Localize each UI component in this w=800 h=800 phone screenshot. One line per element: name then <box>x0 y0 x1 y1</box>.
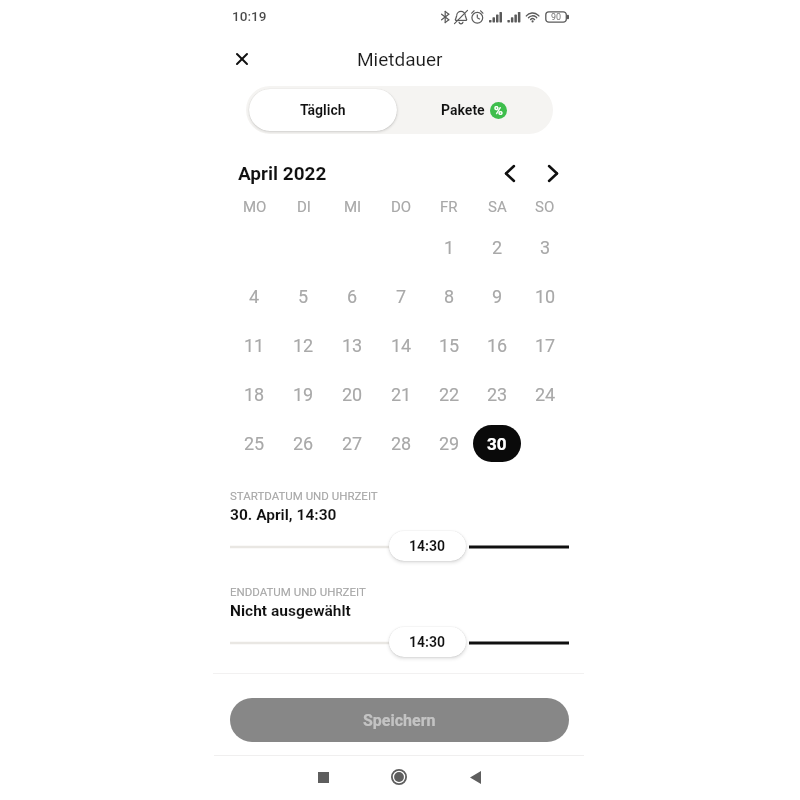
button[interactable]: 6 <box>328 275 377 317</box>
button[interactable]: Home <box>383 761 415 793</box>
staticText: 12 <box>293 335 314 356</box>
staticText: Mietdauer <box>357 48 443 70</box>
staticText: 8 <box>444 286 455 307</box>
button[interactable]: 3 <box>521 226 569 268</box>
button[interactable]: 30 <box>473 425 521 462</box>
button[interactable]: Close <box>226 43 257 74</box>
button[interactable]: 14:30 <box>389 531 466 561</box>
staticText: Nicht ausgewählt <box>230 602 351 620</box>
staticText: % <box>494 104 503 118</box>
button[interactable]: 16 <box>473 324 521 366</box>
staticText: 7 <box>396 286 407 307</box>
button[interactable]: 8 <box>425 275 473 317</box>
button[interactable]: 4 <box>230 275 279 317</box>
button[interactable]: 28 <box>377 422 425 464</box>
staticText: 14 <box>391 335 412 356</box>
staticText: 21 <box>391 384 412 405</box>
button[interactable]: 1 <box>425 226 473 268</box>
staticText: 16 <box>487 335 508 356</box>
staticText: MO <box>243 198 267 216</box>
button[interactable]: 5 <box>279 275 328 317</box>
staticText: 3 <box>540 237 551 258</box>
staticText: 29 <box>439 433 460 454</box>
staticText: 14:30 <box>409 538 446 554</box>
staticText: Speichern <box>363 711 436 730</box>
staticText: DO <box>391 198 412 216</box>
button[interactable]: 26 <box>279 422 328 464</box>
staticText: DI <box>297 198 311 216</box>
button[interactable]: Speichern <box>230 698 569 742</box>
button[interactable]: Pakete <box>397 86 550 134</box>
staticText: 26 <box>293 433 314 454</box>
button[interactable]: 2 <box>473 226 521 268</box>
staticText: STARTDATUM UND UHRZEIT <box>230 489 378 502</box>
staticText: 90 <box>551 12 562 22</box>
staticText: 20 <box>342 384 363 405</box>
staticText: 10 <box>535 286 556 307</box>
button[interactable]: Back <box>459 761 491 793</box>
staticText: April 2022 <box>238 162 327 184</box>
button[interactable]: 27 <box>328 422 377 464</box>
staticText: 10:19 <box>232 8 267 24</box>
staticText: Täglich <box>300 102 346 118</box>
staticText: SO <box>535 198 555 216</box>
button[interactable]: Next month <box>537 159 569 187</box>
button[interactable]: 25 <box>230 422 279 464</box>
button[interactable]: 23 <box>473 373 521 415</box>
staticText: 18 <box>244 384 265 405</box>
staticText: 22 <box>439 384 460 405</box>
button[interactable]: 11 <box>230 324 279 366</box>
button[interactable]: 18 <box>230 373 279 415</box>
staticText: 30. April, 14:30 <box>230 506 337 524</box>
staticText: MI <box>344 198 362 216</box>
staticText: 17 <box>535 335 556 356</box>
button[interactable]: 17 <box>521 324 569 366</box>
button[interactable]: 15 <box>425 324 473 366</box>
staticText: 13 <box>342 335 363 356</box>
staticText: Pakete <box>441 102 485 118</box>
staticText: 27 <box>342 433 363 454</box>
button[interactable]: 24 <box>521 373 569 415</box>
staticText: 24 <box>535 384 556 405</box>
staticText: 19 <box>293 384 314 405</box>
staticText: 4 <box>249 286 260 307</box>
button[interactable]: 12 <box>279 324 328 366</box>
button[interactable]: 20 <box>328 373 377 415</box>
staticText: 25 <box>244 433 265 454</box>
button[interactable]: 22 <box>425 373 473 415</box>
staticText: 30 <box>487 434 507 454</box>
button[interactable]: 10 <box>521 275 569 317</box>
button[interactable]: 14 <box>377 324 425 366</box>
staticText: 28 <box>391 433 412 454</box>
button[interactable]: 21 <box>377 373 425 415</box>
button[interactable]: Recents <box>307 761 339 793</box>
button[interactable]: 13 <box>328 324 377 366</box>
staticText: 23 <box>487 384 508 405</box>
staticText: 11 <box>244 335 265 356</box>
staticText: ENDDATUM UND UHRZEIT <box>230 585 366 598</box>
staticText: 2 <box>492 237 503 258</box>
button[interactable]: 14:30 <box>389 627 466 657</box>
button[interactable]: 29 <box>425 422 473 464</box>
button[interactable]: 9 <box>473 275 521 317</box>
staticText: 6 <box>347 286 358 307</box>
button[interactable]: Previous month <box>494 159 526 187</box>
button[interactable]: 7 <box>377 275 425 317</box>
button[interactable]: 19 <box>279 373 328 415</box>
staticText: 14:30 <box>409 634 446 650</box>
staticText: FR <box>440 198 458 216</box>
staticText: 15 <box>439 335 460 356</box>
staticText: 1 <box>444 237 455 258</box>
staticText: 5 <box>298 286 309 307</box>
button[interactable]: Täglich <box>249 89 397 131</box>
staticText: SA <box>488 198 507 216</box>
staticText: 9 <box>492 286 503 307</box>
